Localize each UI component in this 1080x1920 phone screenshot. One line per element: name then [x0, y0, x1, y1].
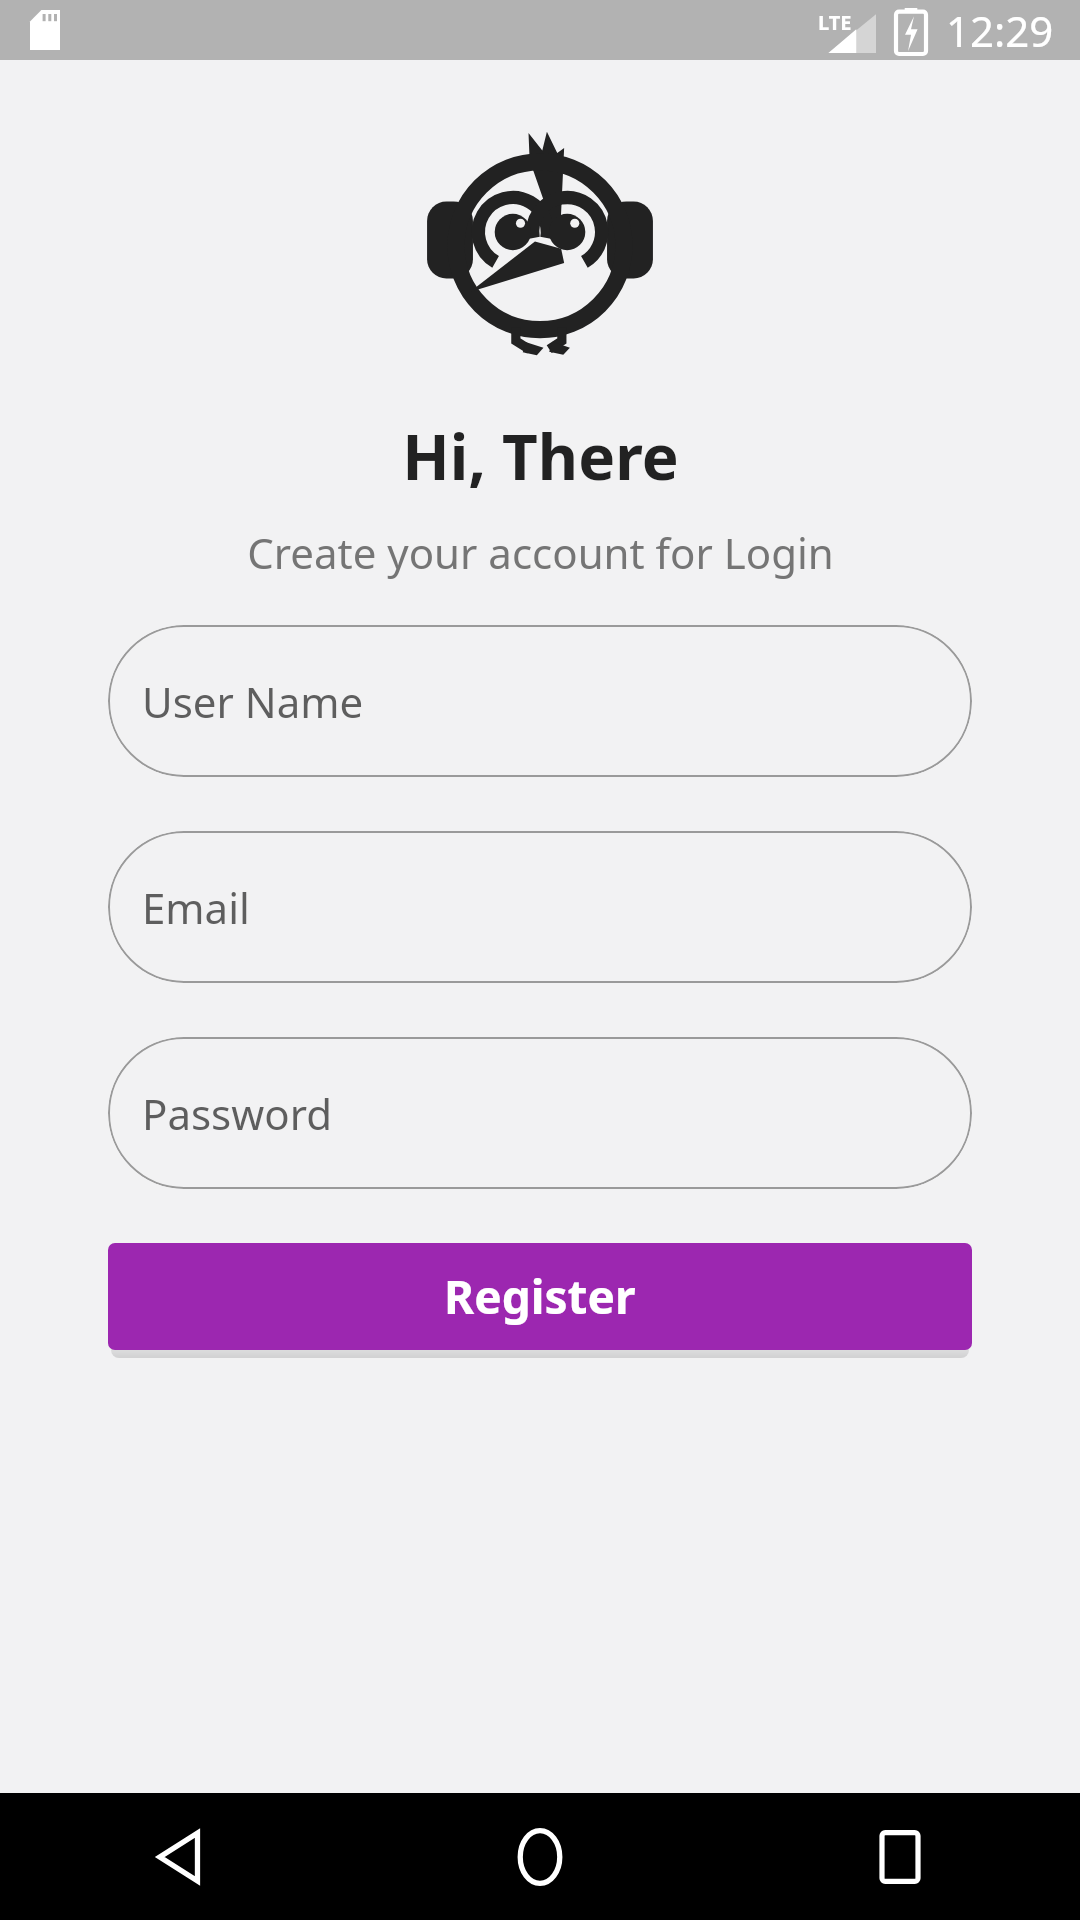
staticText: Hi, There	[402, 414, 679, 498]
button[interactable]: User Name	[108, 625, 972, 777]
button[interactable]: Recents	[720, 1793, 1080, 1920]
button[interactable]: Register	[108, 1243, 972, 1350]
staticText: User Name	[142, 673, 364, 730]
staticText: Register	[444, 1265, 636, 1328]
staticText: Password	[142, 1085, 332, 1142]
button[interactable]: Home	[360, 1793, 720, 1920]
staticText: Email	[142, 879, 250, 936]
staticText: LTE	[818, 9, 852, 36]
staticText: 12:29	[946, 2, 1054, 59]
button[interactable]: Password	[108, 1037, 972, 1189]
staticText: Create your account for Login	[247, 524, 834, 581]
button[interactable]: Back	[0, 1793, 360, 1920]
button[interactable]: Email	[108, 831, 972, 983]
